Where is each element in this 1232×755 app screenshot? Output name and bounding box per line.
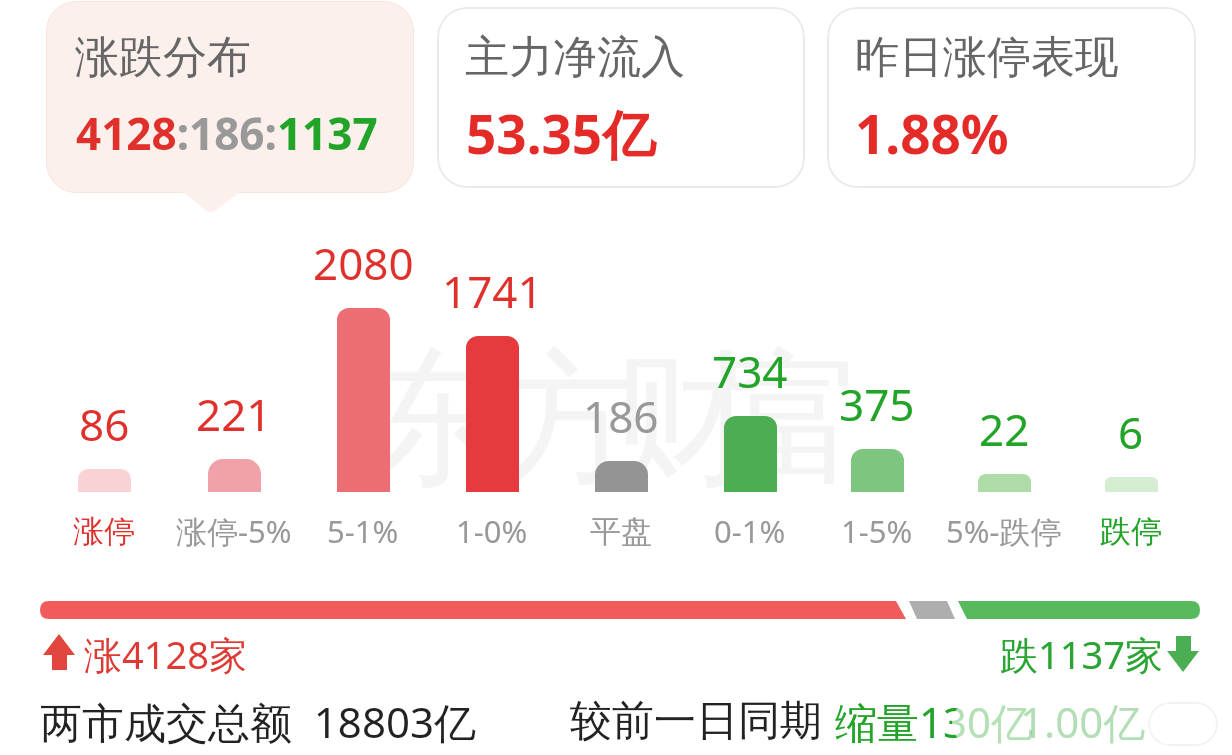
staticText: 较前一日同期 — [570, 695, 822, 748]
staticText: 平盘 — [590, 512, 652, 551]
staticText: 1.88% — [855, 97, 1009, 169]
staticText: 跌1137家 — [1000, 628, 1163, 680]
staticText: 53.35亿 — [466, 97, 656, 169]
staticText: 主力净流入 — [465, 30, 685, 85]
staticText: 1741 — [442, 261, 543, 321]
staticText: 186 — [583, 386, 659, 446]
staticText: 两市成交总额 18803亿 — [40, 693, 476, 750]
staticText: 东 — [364, 329, 509, 512]
staticText: 1-5% — [841, 510, 913, 552]
staticText: 富 — [721, 329, 866, 512]
staticText: 财 — [613, 329, 758, 512]
staticText: 涨停-5% — [176, 510, 292, 552]
staticText: 5-1% — [327, 510, 399, 552]
staticText: 涨停 — [73, 512, 135, 551]
staticText: 86 — [79, 394, 130, 454]
staticText: 昨日涨停表现 — [855, 30, 1119, 85]
staticText: 734 — [712, 341, 788, 401]
button[interactable] — [46, 1, 414, 193]
staticText: 涨跌分布 — [75, 30, 251, 85]
staticText: 5%-跌停 — [946, 510, 1062, 552]
staticText: 375 — [839, 374, 915, 434]
staticText: 221 — [196, 384, 272, 444]
staticText: 6 — [1118, 402, 1144, 462]
staticText: 缩量130亿 — [835, 693, 1034, 750]
staticText: 4128:186:1137 — [76, 103, 378, 163]
button[interactable] — [827, 7, 1196, 188]
staticText: 涨4128家 — [84, 628, 247, 680]
staticText: 22 — [979, 399, 1030, 459]
staticText: 1.00亿 — [1020, 693, 1146, 750]
staticText: 跌停 — [1100, 512, 1162, 551]
button[interactable] — [437, 7, 805, 188]
staticText: 1-0% — [456, 510, 528, 552]
staticText: 0-1% — [714, 510, 786, 552]
staticText: 方 — [495, 329, 640, 512]
staticText: 2080 — [313, 233, 414, 293]
